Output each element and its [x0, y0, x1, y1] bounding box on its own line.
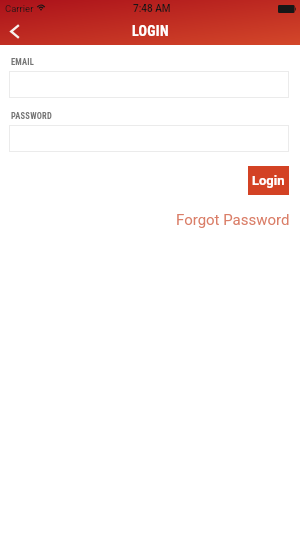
button[interactable]: Back	[1, 18, 28, 45]
staticText: Forgot Password	[176, 211, 290, 229]
staticText: EMAIL	[11, 57, 35, 67]
staticText: Login	[252, 173, 285, 188]
button[interactable]	[9, 125, 289, 152]
staticText: PASSWORD	[11, 111, 52, 121]
staticText: 7:48 AM	[133, 3, 171, 15]
staticText: Carrier	[5, 3, 34, 14]
staticText: LOGIN	[132, 23, 169, 39]
button[interactable]: Forgot Password	[176, 211, 290, 229]
button[interactable]	[9, 71, 289, 98]
button[interactable]: Login	[248, 166, 289, 195]
